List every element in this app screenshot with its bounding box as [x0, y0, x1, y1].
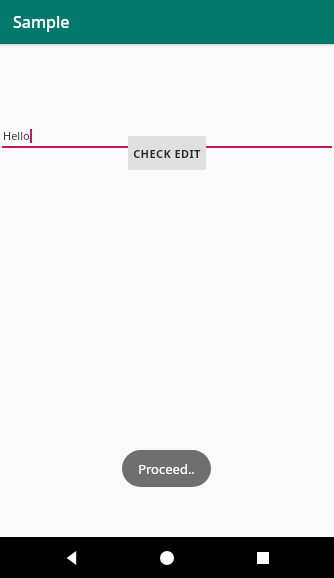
staticText: Hello: [3, 128, 30, 143]
button[interactable]: Back: [48, 537, 96, 578]
button[interactable]: CHECK EDIT: [128, 136, 206, 170]
staticText: Sample: [13, 11, 70, 33]
staticText: CHECK EDIT: [133, 146, 201, 161]
staticText: Proceed..: [138, 460, 195, 478]
button[interactable]: Hello: [0, 128, 334, 148]
button[interactable]: Recent apps: [239, 537, 287, 578]
button[interactable]: Proceed..: [122, 450, 211, 487]
button[interactable]: Home: [143, 537, 191, 578]
